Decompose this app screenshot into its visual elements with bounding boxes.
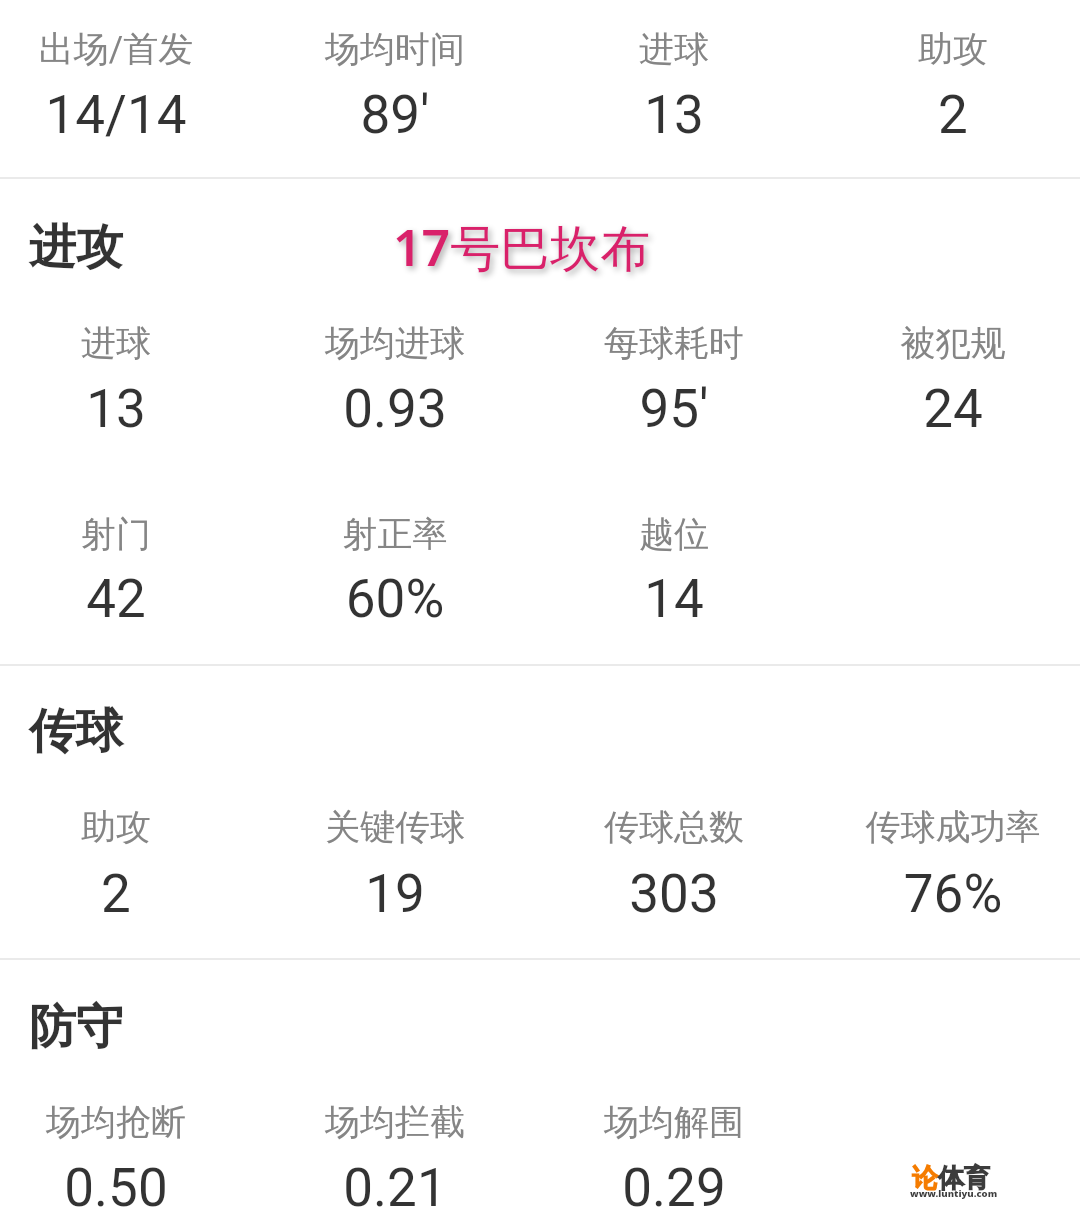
- staticText: 越位: [535, 512, 813, 556]
- button[interactable]: 被犯规: [814, 321, 1080, 440]
- staticText: 助攻: [814, 27, 1080, 71]
- staticText: 论: [912, 1162, 938, 1195]
- button[interactable]: 场均抢断: [0, 1100, 255, 1219]
- staticText: 14/14: [0, 84, 255, 146]
- staticText: 射正率: [256, 512, 534, 556]
- button[interactable]: 进球: [535, 27, 813, 146]
- button[interactable]: 进球: [0, 321, 255, 440]
- staticText: 场均拦截: [256, 1100, 534, 1144]
- staticText: 场均抢断: [0, 1100, 255, 1144]
- staticText: 0.29: [535, 1157, 813, 1219]
- staticText: 被犯规: [814, 321, 1080, 365]
- button[interactable]: 场均时间: [256, 27, 534, 146]
- button[interactable]: 越位: [535, 512, 813, 630]
- button[interactable]: 每球耗时: [535, 321, 813, 440]
- button[interactable]: 射正率: [256, 512, 534, 630]
- staticText: 场均进球: [256, 321, 534, 365]
- button[interactable]: 关键传球: [256, 805, 534, 925]
- staticText: 场均解围: [535, 1100, 813, 1144]
- staticText: 传球总数: [535, 805, 813, 849]
- staticText: 进攻: [29, 218, 123, 277]
- staticText: 19: [256, 863, 534, 925]
- staticText: 42: [0, 568, 255, 630]
- staticText: 助攻: [0, 805, 255, 849]
- staticText: 0.93: [256, 378, 534, 440]
- staticText: 2: [814, 84, 1080, 146]
- staticText: 场均时间: [256, 27, 534, 71]
- staticText: 0.21: [256, 1157, 534, 1219]
- staticText: 防守: [29, 998, 123, 1057]
- staticText: 出场/首发: [0, 27, 255, 71]
- staticText: 关键传球: [256, 805, 534, 849]
- button[interactable]: 助攻: [814, 27, 1080, 146]
- staticText: 进球: [535, 27, 813, 71]
- staticText: 13: [535, 84, 813, 146]
- button[interactable]: 传球: [29, 702, 123, 761]
- staticText: 14: [535, 568, 813, 630]
- button[interactable]: 助攻: [0, 805, 255, 925]
- staticText: www.luntiyu.com: [910, 1187, 998, 1200]
- button[interactable]: 出场/首发: [0, 27, 255, 146]
- button[interactable]: 17号巴坎布: [393, 213, 651, 281]
- staticText: 传球: [29, 702, 123, 761]
- staticText: 0.50: [0, 1157, 255, 1219]
- button[interactable]: 传球总数: [535, 805, 813, 925]
- staticText: 13: [0, 378, 255, 440]
- staticText: 2: [0, 863, 255, 925]
- staticText: 射门: [0, 512, 255, 556]
- button[interactable]: 防守: [29, 998, 123, 1057]
- staticText: 303: [535, 863, 813, 925]
- staticText: 89': [256, 84, 534, 146]
- staticText: 60%: [256, 568, 534, 630]
- button[interactable]: 射门: [0, 512, 255, 630]
- button[interactable]: 场均进球: [256, 321, 534, 440]
- button[interactable]: 论体育 www.luntiyu.com: [908, 1158, 1008, 1213]
- staticText: 95': [535, 378, 813, 440]
- button[interactable]: 传球成功率: [814, 805, 1080, 925]
- staticText: 每球耗时: [535, 321, 813, 365]
- button[interactable]: 场均拦截: [256, 1100, 534, 1219]
- staticText: 体育: [938, 1162, 990, 1195]
- staticText: 76%: [814, 863, 1080, 925]
- button[interactable]: 进攻: [29, 218, 123, 277]
- staticText: 进球: [0, 321, 255, 365]
- staticText: 17号巴坎布: [393, 213, 651, 281]
- staticText: 24: [814, 378, 1080, 440]
- staticText: 传球成功率: [814, 805, 1080, 849]
- button[interactable]: 场均解围: [535, 1100, 813, 1219]
